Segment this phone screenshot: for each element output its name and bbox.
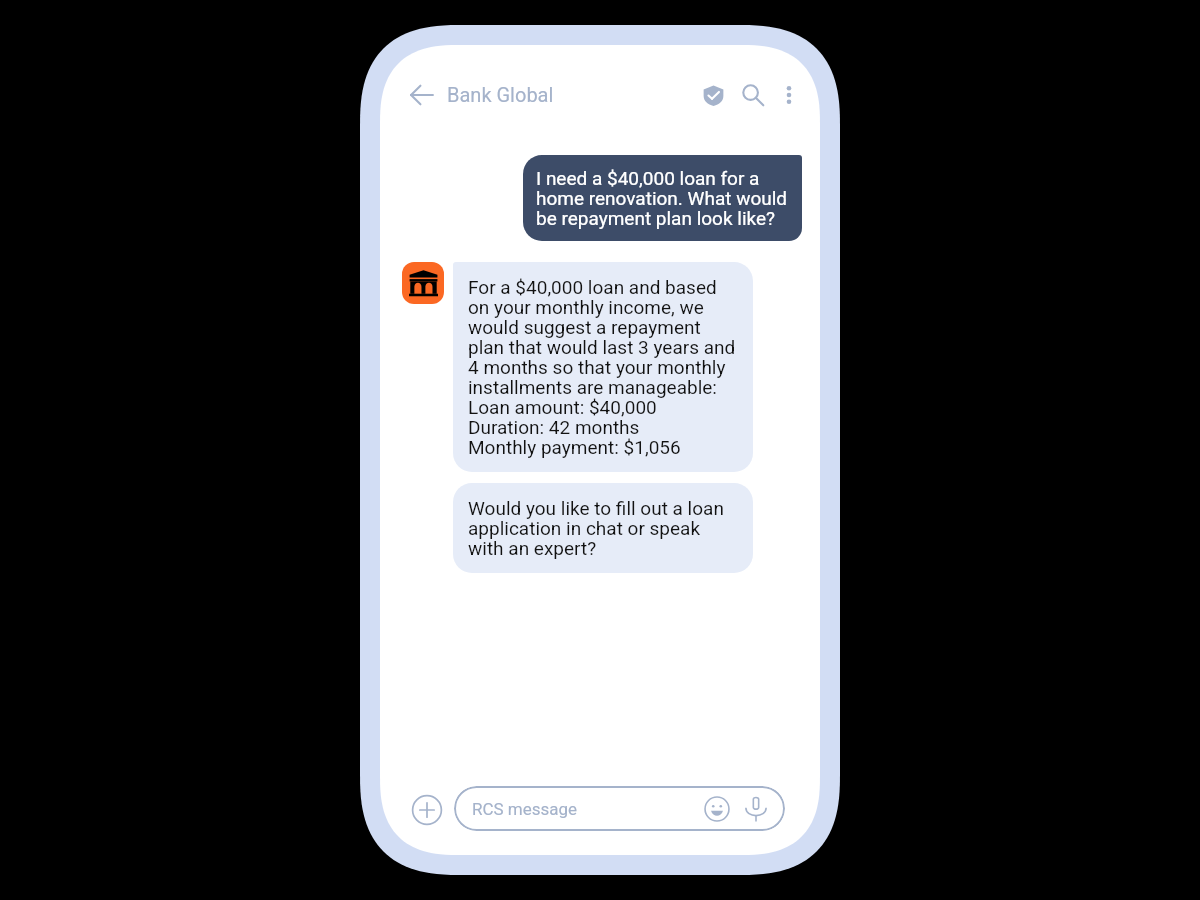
staticText: RCS message (472, 799, 578, 819)
button[interactable]: RCS message (454, 786, 785, 831)
button[interactable]: Add attachment (405, 788, 449, 832)
button[interactable]: More options (767, 73, 811, 117)
button[interactable]: Back (400, 73, 444, 117)
button[interactable]: Search (731, 73, 775, 117)
button[interactable]: For a $40,000 loan and based on your mon… (453, 262, 753, 472)
button[interactable]: Bank Global profile (402, 262, 444, 304)
button[interactable]: Choose emoji (700, 792, 734, 826)
button[interactable]: I need a $40,000 loan for a home renovat… (523, 155, 802, 241)
button[interactable]: Would you like to fill out a loan applic… (453, 483, 753, 573)
button[interactable]: Voice message (739, 792, 773, 826)
button[interactable]: Verified business (691, 73, 735, 117)
staticText: For a $40,000 loan and based on your mon… (468, 276, 736, 458)
staticText: I need a $40,000 loan for a home renovat… (536, 167, 788, 229)
staticText: Would you like to fill out a loan applic… (468, 497, 724, 559)
staticText: Bank Global (447, 83, 554, 106)
